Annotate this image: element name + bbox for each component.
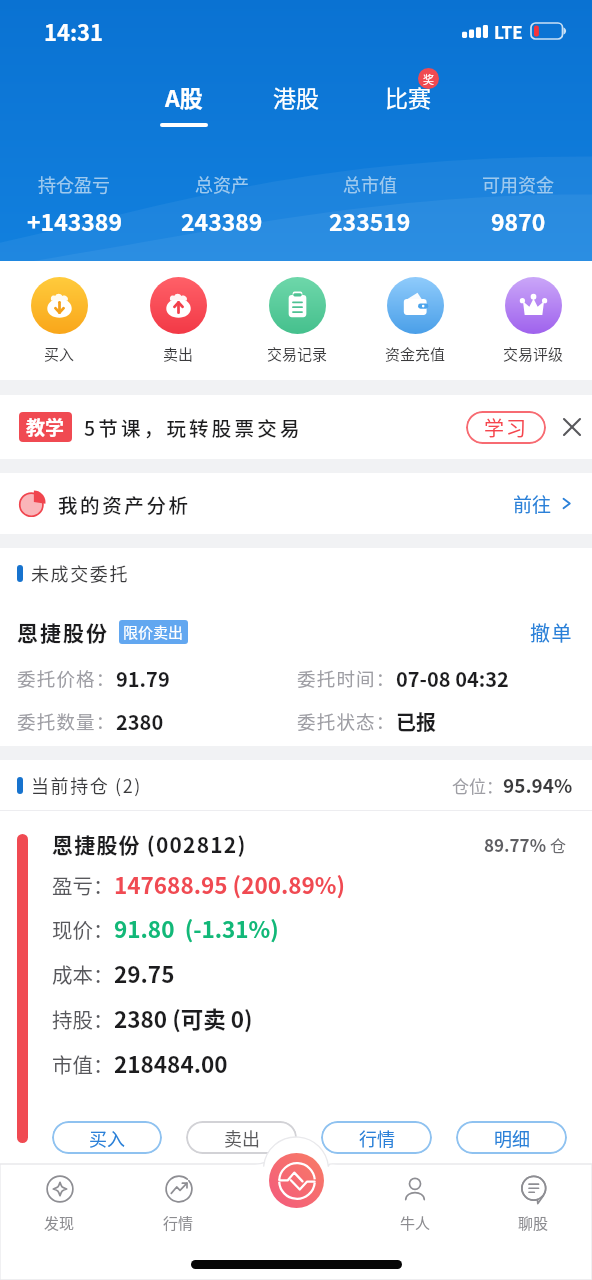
staticText: 147688.95 (200.89%) (114, 868, 345, 901)
staticText: 2380 (可卖 0) (114, 1002, 253, 1035)
staticText: 现价： (52, 914, 114, 944)
staticText: 91.79 (116, 664, 170, 693)
button[interactable]: 关闭 (560, 415, 584, 439)
staticText: 5节课，玩转股票交易 (84, 413, 303, 441)
button[interactable]: 买入 (0, 277, 119, 365)
staticText: 成本： (52, 959, 114, 989)
staticText: 89.77% (484, 832, 547, 857)
button[interactable]: 撤单 (530, 618, 573, 647)
staticText: 总市值 (343, 171, 397, 197)
staticText: 已报 (396, 707, 436, 736)
staticText: 资金充值 (385, 343, 446, 365)
staticText: 行情 (359, 1125, 395, 1151)
staticText: 持仓盈亏 (38, 171, 110, 197)
staticText: A股 (165, 80, 203, 113)
staticText: 教学 (26, 413, 65, 441)
button[interactable]: A股 (160, 80, 208, 127)
staticText: 行情 (163, 1212, 194, 1234)
staticText: 明细 (494, 1125, 530, 1151)
staticText: 发现 (44, 1212, 75, 1234)
staticText: 总资产 (195, 171, 249, 197)
staticText: 当前持仓 (2) (31, 772, 142, 798)
staticText: 盈亏： (52, 870, 114, 900)
staticText: 比赛 (385, 80, 431, 113)
button[interactable]: 卖出 (119, 277, 238, 365)
button[interactable]: 行情 (321, 1121, 432, 1154)
staticText: 买入 (89, 1125, 125, 1151)
staticText: 2380 (116, 707, 164, 736)
staticText: 仓位： (452, 773, 503, 798)
button[interactable]: 交易评级 (474, 277, 592, 365)
button[interactable]: 卖出 (186, 1121, 297, 1154)
staticText: 07-08 04:32 (396, 664, 509, 693)
staticText: 市值： (52, 1049, 114, 1079)
button[interactable]: 发现 (0, 1172, 119, 1234)
staticText: 我的资产分析 (58, 490, 191, 518)
staticText: 29.75 (114, 957, 175, 990)
staticText: 委托数量： (17, 708, 116, 735)
staticText: 交易记录 (267, 343, 328, 365)
staticText: 14:31 (44, 15, 104, 47)
staticText: 95.94% (503, 771, 573, 799)
staticText: 233519 (329, 204, 411, 237)
staticText: +143389 (27, 204, 122, 237)
staticText: 可用资金 (482, 171, 554, 197)
staticText: 未成交委托 (31, 560, 129, 586)
button[interactable]: 港股 (272, 80, 320, 127)
staticText: 买入 (44, 343, 75, 365)
staticText: 限价卖出 (123, 621, 184, 643)
button[interactable]: 我的资产分析 (0, 473, 592, 534)
staticText: 恩捷股份 (002812) (52, 829, 247, 859)
button[interactable]: 买入 (52, 1121, 162, 1154)
staticText: 91.80 (-1.31%) (114, 912, 279, 945)
staticText: 恩捷股份 (17, 617, 109, 647)
button[interactable]: 交易记录 (238, 277, 356, 365)
button[interactable]: 聊股 (474, 1172, 592, 1234)
staticText: 学习 (484, 413, 528, 442)
button[interactable]: 比赛 (384, 80, 432, 127)
staticText: 委托状态： (297, 708, 396, 735)
staticText: 委托时间： (297, 665, 396, 692)
staticText: LTE (494, 19, 523, 44)
staticText: 卖出 (163, 343, 194, 365)
staticText: 聊股 (518, 1212, 549, 1234)
button[interactable]: 交易 (269, 1153, 324, 1208)
button[interactable]: 明细 (456, 1121, 567, 1154)
staticText: 港股 (273, 80, 319, 113)
staticText: 仓 (550, 833, 567, 856)
staticText: 交易评级 (503, 343, 564, 365)
staticText: 奖 (423, 71, 434, 87)
button[interactable]: 学习 (466, 411, 546, 444)
staticText: 218484.00 (114, 1047, 228, 1080)
staticText: 前往 (513, 490, 552, 518)
staticText: 243389 (181, 204, 263, 237)
button[interactable]: 行情 (119, 1172, 238, 1234)
staticText: 持股： (52, 1004, 114, 1034)
staticText: 委托价格： (17, 665, 116, 692)
staticText: 卖出 (224, 1125, 260, 1151)
staticText: 牛人 (400, 1212, 431, 1234)
staticText: 9870 (491, 204, 546, 237)
button[interactable]: 资金充值 (356, 277, 474, 365)
button[interactable]: 牛人 (356, 1172, 474, 1234)
